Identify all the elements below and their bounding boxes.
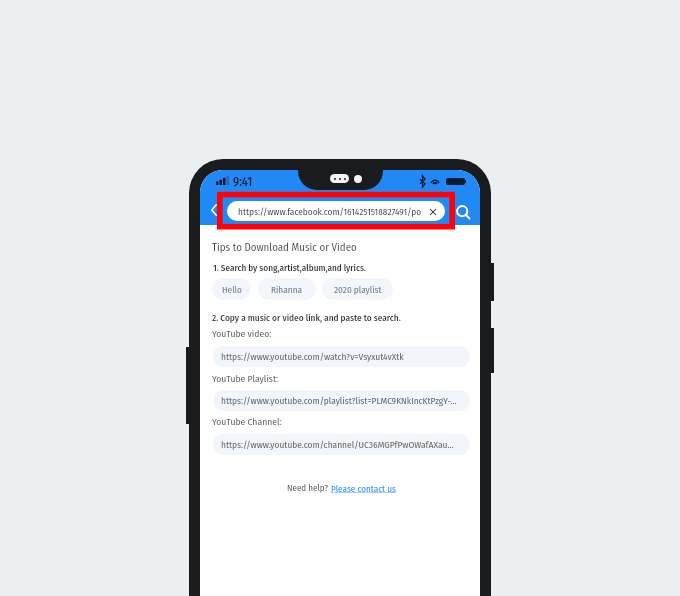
staticText: YouTube Channel: [212, 416, 282, 428]
staticText: 9:41 [233, 175, 253, 190]
staticText: Tips to Download Music or Video [212, 241, 357, 254]
button[interactable]: https://www.facebook.com/161425151882749… [227, 201, 445, 221]
button[interactable]: Please contact us [331, 483, 396, 494]
button[interactable]: Rihanna [258, 278, 316, 300]
button[interactable]: Search [449, 198, 476, 225]
button[interactable]: https://www.youtube.com/watch?v=Vsyxut4v… [213, 346, 470, 367]
staticText: YouTube Playlist: [212, 373, 279, 385]
staticText: https://www.youtube.com/playlist?list=PL… [221, 395, 457, 406]
staticText: 2020 playlist [334, 284, 382, 295]
button[interactable]: https://www.youtube.com/playlist?list=PL… [213, 390, 470, 411]
staticText: Rihanna [271, 284, 303, 295]
staticText: https://www.facebook.com/161425151882749… [238, 206, 427, 217]
staticText: Hello [222, 284, 242, 295]
staticText: Need help? [287, 483, 331, 494]
staticText: 1. Search by song,artist,album,and lyric… [213, 262, 366, 273]
button[interactable]: Hello [212, 278, 251, 300]
staticText: https://www.youtube.com/channel/UC36MGPf… [221, 439, 454, 450]
button[interactable]: https://www.youtube.com/channel/UC36MGPf… [213, 434, 470, 455]
button[interactable]: Back [203, 196, 225, 224]
button[interactable]: 2020 playlist [322, 278, 393, 300]
staticText: https://www.youtube.com/watch?v=Vsyxut4v… [221, 351, 404, 362]
staticText: 2. Copy a music or video link, and paste… [212, 312, 401, 323]
staticText: YouTube video: [212, 328, 272, 340]
